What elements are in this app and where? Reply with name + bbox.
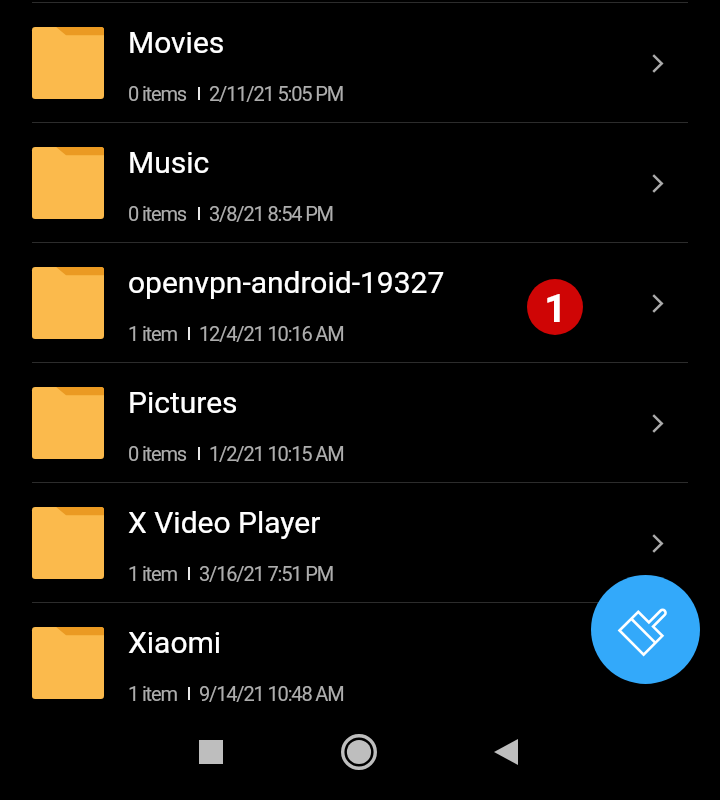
staticText: openvpn-android-19327 — [128, 265, 445, 300]
button[interactable]: X Video Player — [0, 483, 720, 602]
button[interactable]: Home — [319, 712, 399, 792]
staticText: 3/16/21 7:51 PM — [199, 562, 334, 585]
staticText: Pictures — [128, 385, 238, 420]
button[interactable]: Pictures — [0, 363, 720, 482]
button[interactable]: Back — [466, 712, 546, 792]
button[interactable]: Xiaomi — [0, 603, 720, 722]
staticText: 0 items — [128, 442, 187, 465]
staticText: 1 item — [128, 562, 177, 585]
staticText: 9/14/21 10:48 AM — [199, 682, 344, 705]
staticText: 2/11/21 5:05 PM — [209, 82, 344, 105]
staticText: 12/4/21 10:16 AM — [199, 322, 344, 345]
staticText: 0 items — [128, 202, 187, 225]
button[interactable]: Music — [0, 123, 720, 242]
button[interactable]: Open Xiaomi — [631, 638, 683, 688]
staticText: 0 items — [128, 82, 187, 105]
button[interactable]: Clean up — [591, 575, 700, 684]
staticText: Movies — [128, 25, 225, 60]
staticText: 1 — [544, 286, 567, 332]
staticText: 1/2/21 10:15 AM — [209, 442, 344, 465]
button[interactable]: Open Music — [631, 158, 683, 208]
staticText: Xiaomi — [128, 625, 222, 660]
button[interactable]: openvpn-android-19327 — [0, 243, 720, 362]
button[interactable]: Recent apps — [171, 712, 251, 792]
button[interactable]: Open Movies — [631, 38, 683, 88]
staticText: X Video Player — [128, 505, 321, 540]
button[interactable]: Open X Video Player — [631, 518, 683, 568]
button[interactable]: Open Pictures — [631, 398, 683, 448]
staticText: Music — [128, 145, 210, 180]
button[interactable]: Open openvpn-android-19327 — [631, 278, 683, 328]
staticText: 1 item — [128, 682, 177, 705]
button[interactable]: Movies — [0, 3, 720, 122]
staticText: 3/8/21 8:54 PM — [209, 202, 333, 225]
staticText: 1 item — [128, 322, 177, 345]
